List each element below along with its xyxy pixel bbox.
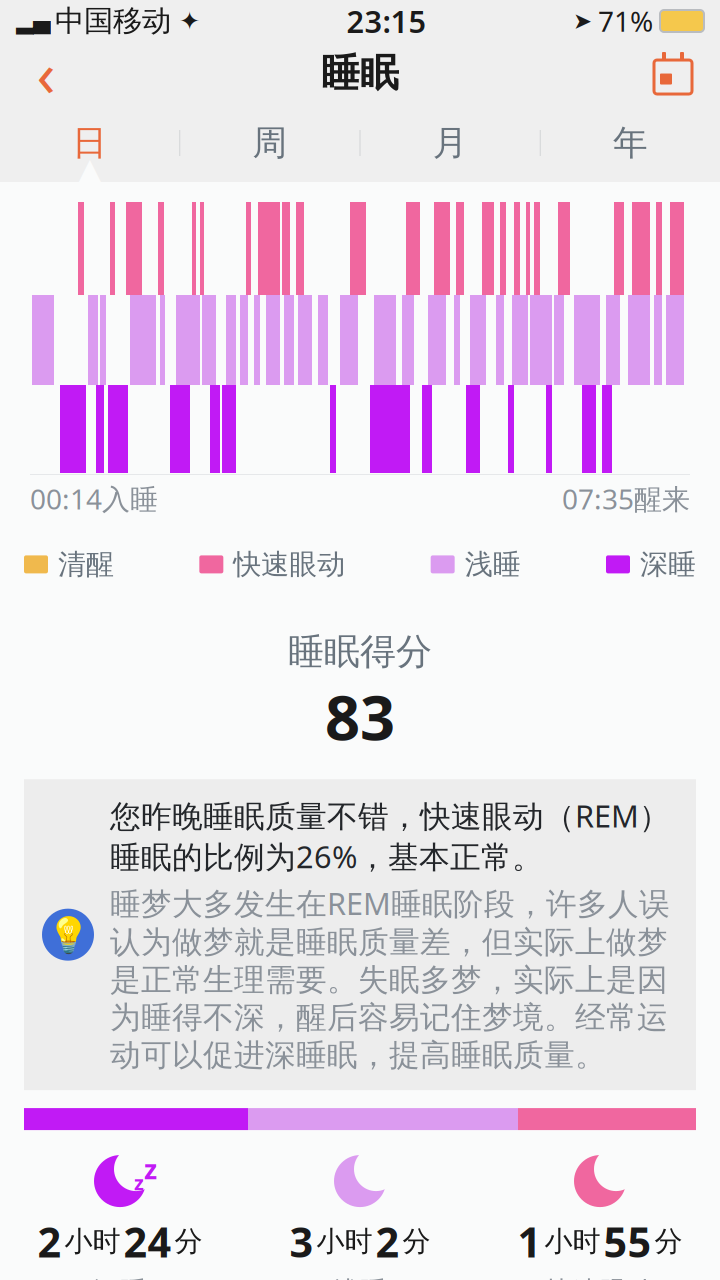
staticText: 浅睡	[465, 547, 521, 582]
staticText: 分	[654, 1224, 682, 1259]
staticText: 分	[174, 1224, 202, 1259]
staticText: 小时	[544, 1224, 600, 1259]
staticText: 快速眼动	[546, 1275, 654, 1280]
staticText: 您昨晚睡眠质量不错，快速眼动（REM）睡眠的比例为26%，基本正常。	[110, 795, 670, 877]
staticText: 00:14入睡	[30, 480, 158, 517]
staticText: 3	[289, 1214, 313, 1269]
staticText: 年	[613, 122, 648, 164]
staticText: 深睡	[93, 1275, 147, 1280]
staticText: 周	[252, 122, 287, 164]
staticText: 睡眠得分	[288, 630, 432, 674]
staticText: z	[144, 1151, 157, 1186]
staticText: 月	[433, 122, 468, 164]
staticText: 💡	[46, 915, 89, 954]
staticText: 小时	[64, 1224, 120, 1259]
staticText: 浅睡	[333, 1275, 387, 1280]
staticText: 分	[402, 1224, 430, 1259]
staticText: 睡梦大多发生在REM睡眠阶段，许多人误认为做梦就是睡眠质量差，但实际上做梦是正常…	[110, 883, 670, 1074]
staticText: 2	[375, 1214, 399, 1269]
staticText: 2	[37, 1214, 61, 1269]
staticText: 07:35醒来	[562, 480, 690, 517]
staticText: ✦	[179, 7, 200, 35]
staticText: 1	[517, 1214, 541, 1269]
staticText: z	[134, 1169, 144, 1196]
staticText: 快速眼动	[233, 547, 345, 582]
staticText: 小时	[316, 1224, 372, 1259]
button[interactable]: 日历	[642, 42, 704, 104]
staticText: ‹	[36, 32, 55, 114]
staticText: 深睡	[640, 547, 696, 582]
staticText: ▂▄	[16, 8, 50, 34]
button[interactable]: 返回	[16, 42, 76, 104]
staticText: 71%	[598, 2, 653, 40]
staticText: 55	[603, 1214, 651, 1269]
button[interactable]: 月	[360, 107, 540, 179]
button[interactable]: 周	[180, 107, 359, 179]
staticText: 清醒	[58, 547, 114, 582]
staticText: ▲	[76, 151, 103, 190]
staticText: 24	[123, 1214, 171, 1269]
staticText: 23:15	[346, 1, 426, 41]
staticText: 睡眠	[321, 49, 399, 97]
button[interactable]: 年	[541, 107, 720, 179]
staticText: 83	[325, 676, 395, 757]
staticText: ➤	[573, 8, 592, 34]
staticText: 中国移动	[55, 3, 171, 39]
staticText: 日	[72, 122, 107, 164]
button[interactable]: 日	[0, 107, 179, 179]
